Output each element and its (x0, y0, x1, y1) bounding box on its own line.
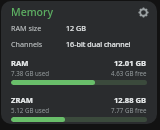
staticText: 16-bit dual channel (66, 39, 131, 49)
button[interactable]: Settings (135, 4, 151, 20)
staticText: ZRAM (11, 95, 33, 105)
staticText: RAM size (11, 23, 66, 33)
staticText: 7.38 GB used (11, 69, 50, 77)
staticText: RAM (11, 58, 29, 68)
staticText: Channels (11, 39, 66, 49)
staticText: 12.01 GB (114, 58, 147, 68)
button[interactable]: RAM (1, 58, 157, 85)
button[interactable]: Channels (1, 39, 157, 49)
staticText: Memory (11, 5, 54, 19)
staticText: 4.63 GB free (111, 69, 147, 77)
button[interactable]: ZRAM (1, 95, 157, 122)
staticText: 5.12 GB used (11, 106, 50, 114)
staticText: 12.88 GB (114, 95, 147, 105)
staticText: 7.77 GB free (111, 106, 147, 114)
staticText: 12 GB (66, 23, 86, 33)
button[interactable]: RAM size (1, 23, 157, 33)
